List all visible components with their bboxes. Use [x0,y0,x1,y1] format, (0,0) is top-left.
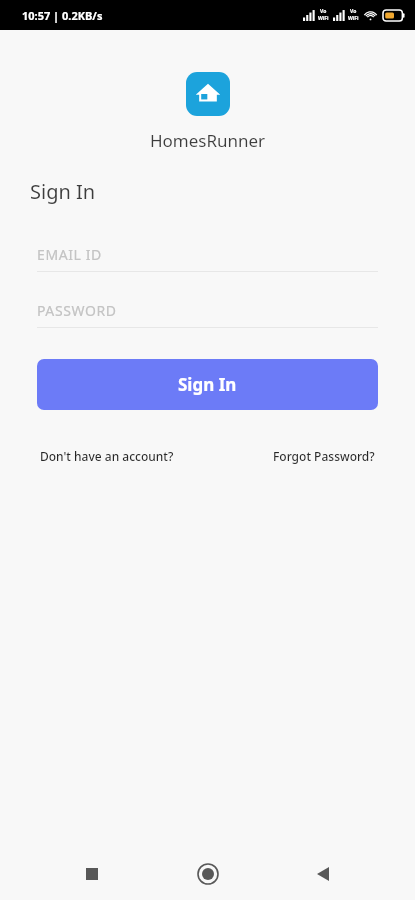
staticText: Sign In [30,178,96,205]
staticText: 10:57 | 0.2KB/s [22,8,103,23]
staticText: WiFi [348,15,359,22]
button[interactable]: Don't have an account? [40,442,174,470]
button[interactable]: Recents [68,850,116,898]
staticText: Vo [350,8,357,15]
staticText: Don't have an account? [40,448,174,464]
button[interactable]: Back [299,850,347,898]
button[interactable]: Forgot Password? [273,442,375,470]
staticText: HomesRunner [0,129,415,152]
button[interactable]: Sign In [37,359,378,410]
staticText: EMAIL ID [37,245,102,264]
staticText: Sign In [178,373,237,396]
staticText: PASSWORD [37,301,117,320]
staticText: WiFi [318,15,329,22]
button[interactable]: Home [184,850,232,898]
staticText: Vo [320,8,327,15]
staticText: Forgot Password? [273,448,375,464]
